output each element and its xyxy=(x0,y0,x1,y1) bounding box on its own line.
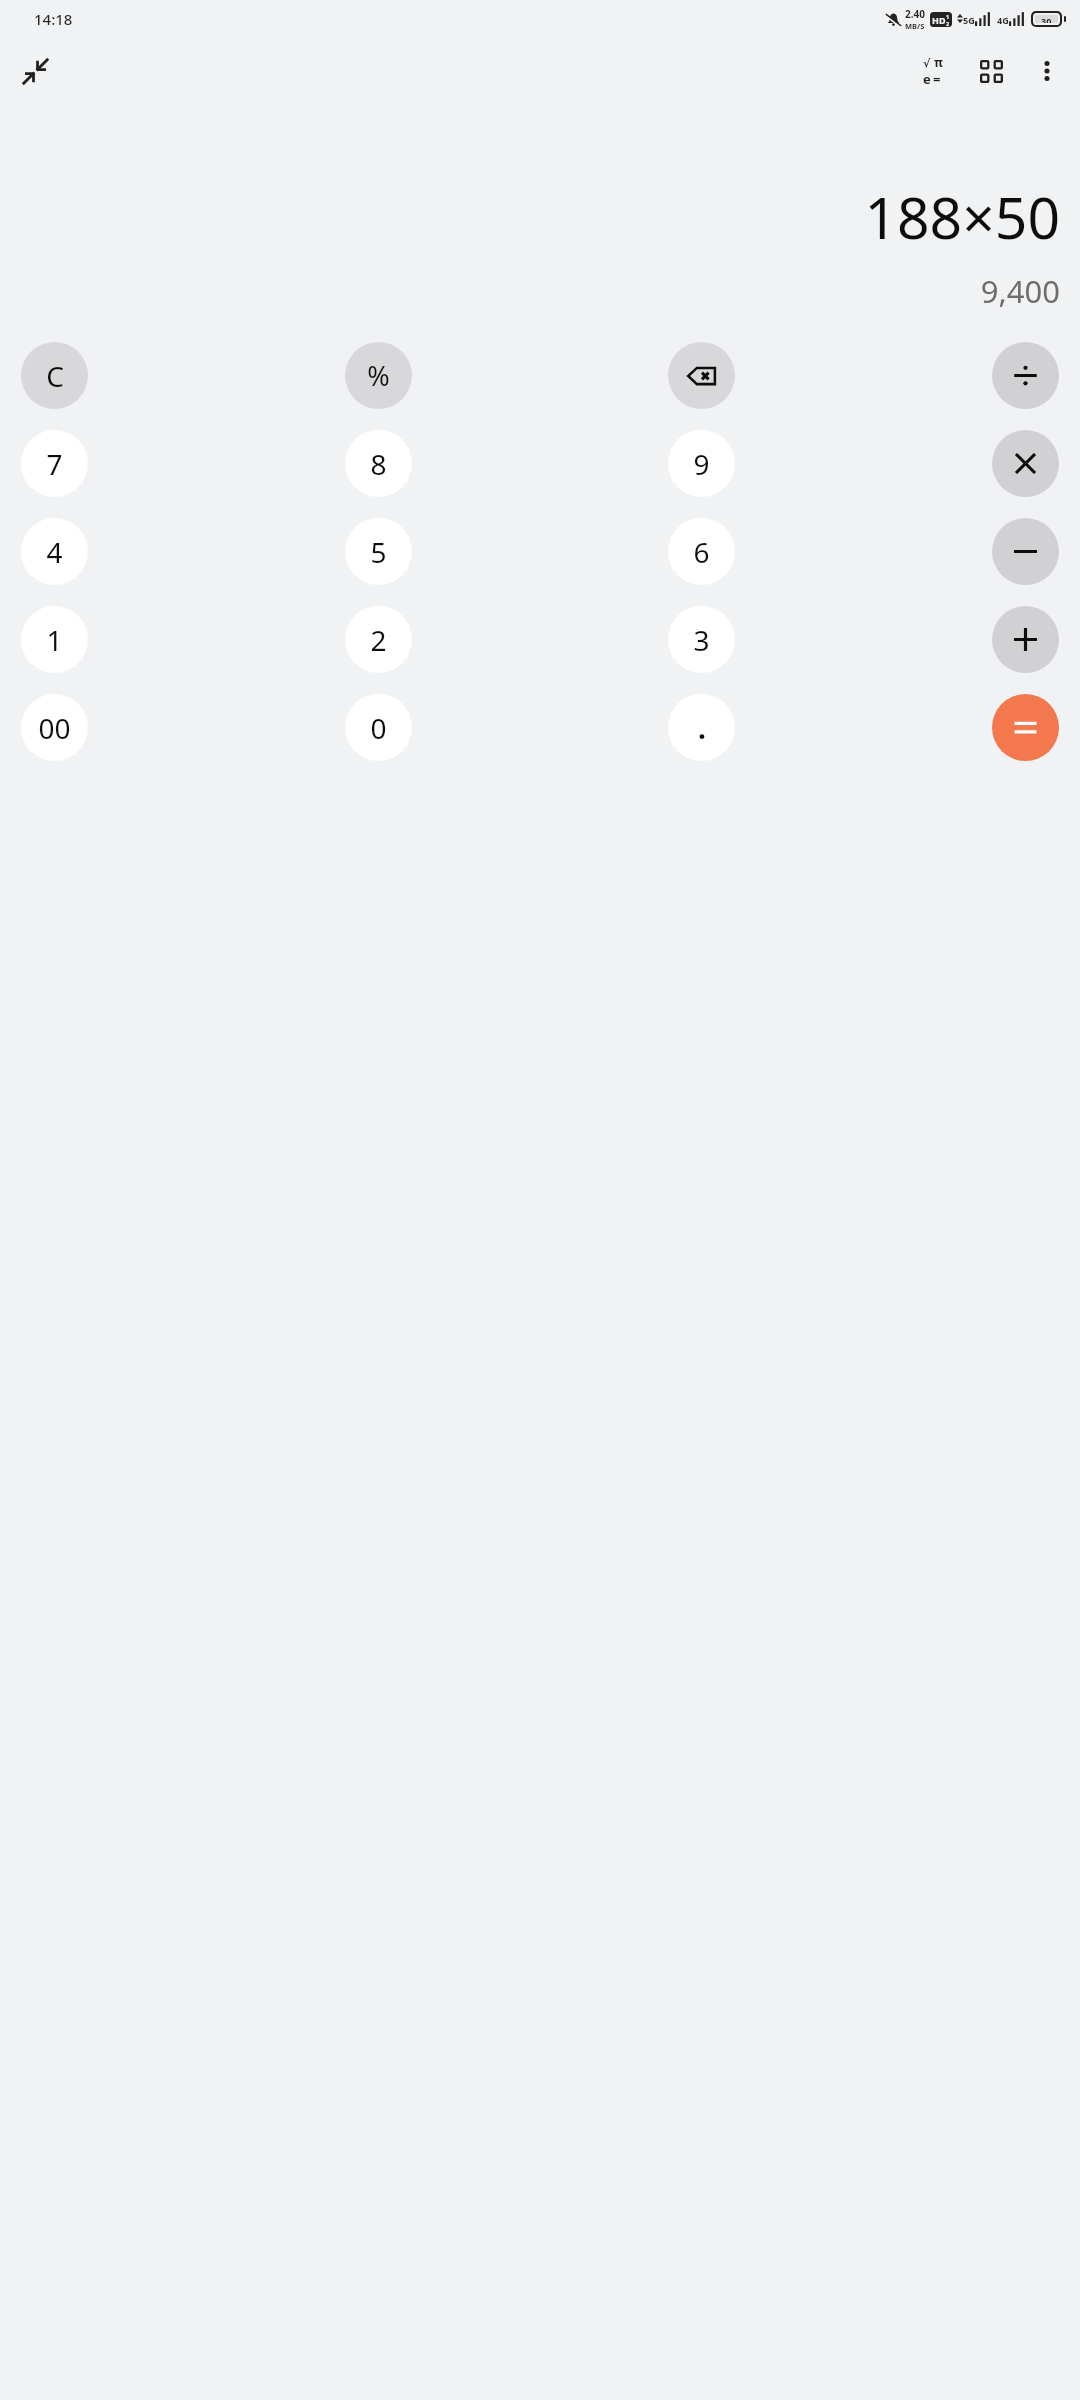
staticText: 7 xyxy=(46,445,63,483)
button[interactable]: More options xyxy=(1020,44,1074,98)
staticText: 1 xyxy=(46,621,63,659)
staticText: e xyxy=(923,70,931,88)
staticText: 4 xyxy=(46,533,63,571)
button[interactable]: Minus xyxy=(992,518,1059,585)
staticText: 2.40 xyxy=(905,7,925,21)
button[interactable]: Clear xyxy=(21,342,88,409)
staticText: 5G xyxy=(963,14,975,26)
button[interactable]: 1 xyxy=(21,606,88,673)
staticText: 5 xyxy=(370,533,387,571)
staticText: 8 xyxy=(370,445,387,483)
staticText: 00 xyxy=(38,709,71,747)
staticText: 2 xyxy=(370,621,387,659)
button[interactable]: Percent xyxy=(345,342,412,409)
button[interactable]: Multiply xyxy=(992,430,1059,497)
staticText: C xyxy=(46,357,64,395)
button[interactable]: 6 xyxy=(668,518,735,585)
staticText: 4G xyxy=(997,14,1009,26)
staticText: 14:18 xyxy=(34,9,73,29)
button[interactable]: Scientific mode xyxy=(906,44,960,98)
button[interactable]: 4 xyxy=(21,518,88,585)
staticText: π xyxy=(934,54,943,70)
button[interactable]: Decimal point xyxy=(668,694,735,761)
button[interactable]: Double zero xyxy=(21,694,88,761)
staticText: 1 xyxy=(946,13,950,20)
staticText: 6 xyxy=(693,533,710,571)
staticText: 30 xyxy=(1041,15,1052,23)
button[interactable]: Converters xyxy=(964,44,1018,98)
button[interactable]: 7 xyxy=(21,430,88,497)
staticText: √ xyxy=(923,57,931,70)
button[interactable]: Backspace xyxy=(668,342,735,409)
staticText: 2 xyxy=(946,20,950,27)
button[interactable]: Collapse xyxy=(8,44,62,98)
staticText: % xyxy=(367,357,390,394)
button[interactable]: 8 xyxy=(345,430,412,497)
staticText: HD xyxy=(932,14,946,26)
button[interactable]: Plus xyxy=(992,606,1059,673)
staticText: 9,400 xyxy=(980,270,1060,312)
button[interactable]: 9 xyxy=(668,430,735,497)
button[interactable]: Equals xyxy=(992,694,1059,761)
staticText: 188×50 xyxy=(864,178,1060,256)
staticText: MB/S xyxy=(905,21,925,31)
button[interactable]: 5 xyxy=(345,518,412,585)
staticText: . xyxy=(698,709,706,747)
staticText: 0 xyxy=(370,709,387,747)
button[interactable]: 3 xyxy=(668,606,735,673)
button[interactable]: Divide xyxy=(992,342,1059,409)
staticText: 3 xyxy=(693,621,710,659)
staticText: = xyxy=(933,70,941,88)
button[interactable]: 0 xyxy=(345,694,412,761)
staticText: 9 xyxy=(693,445,710,483)
button[interactable]: 2 xyxy=(345,606,412,673)
